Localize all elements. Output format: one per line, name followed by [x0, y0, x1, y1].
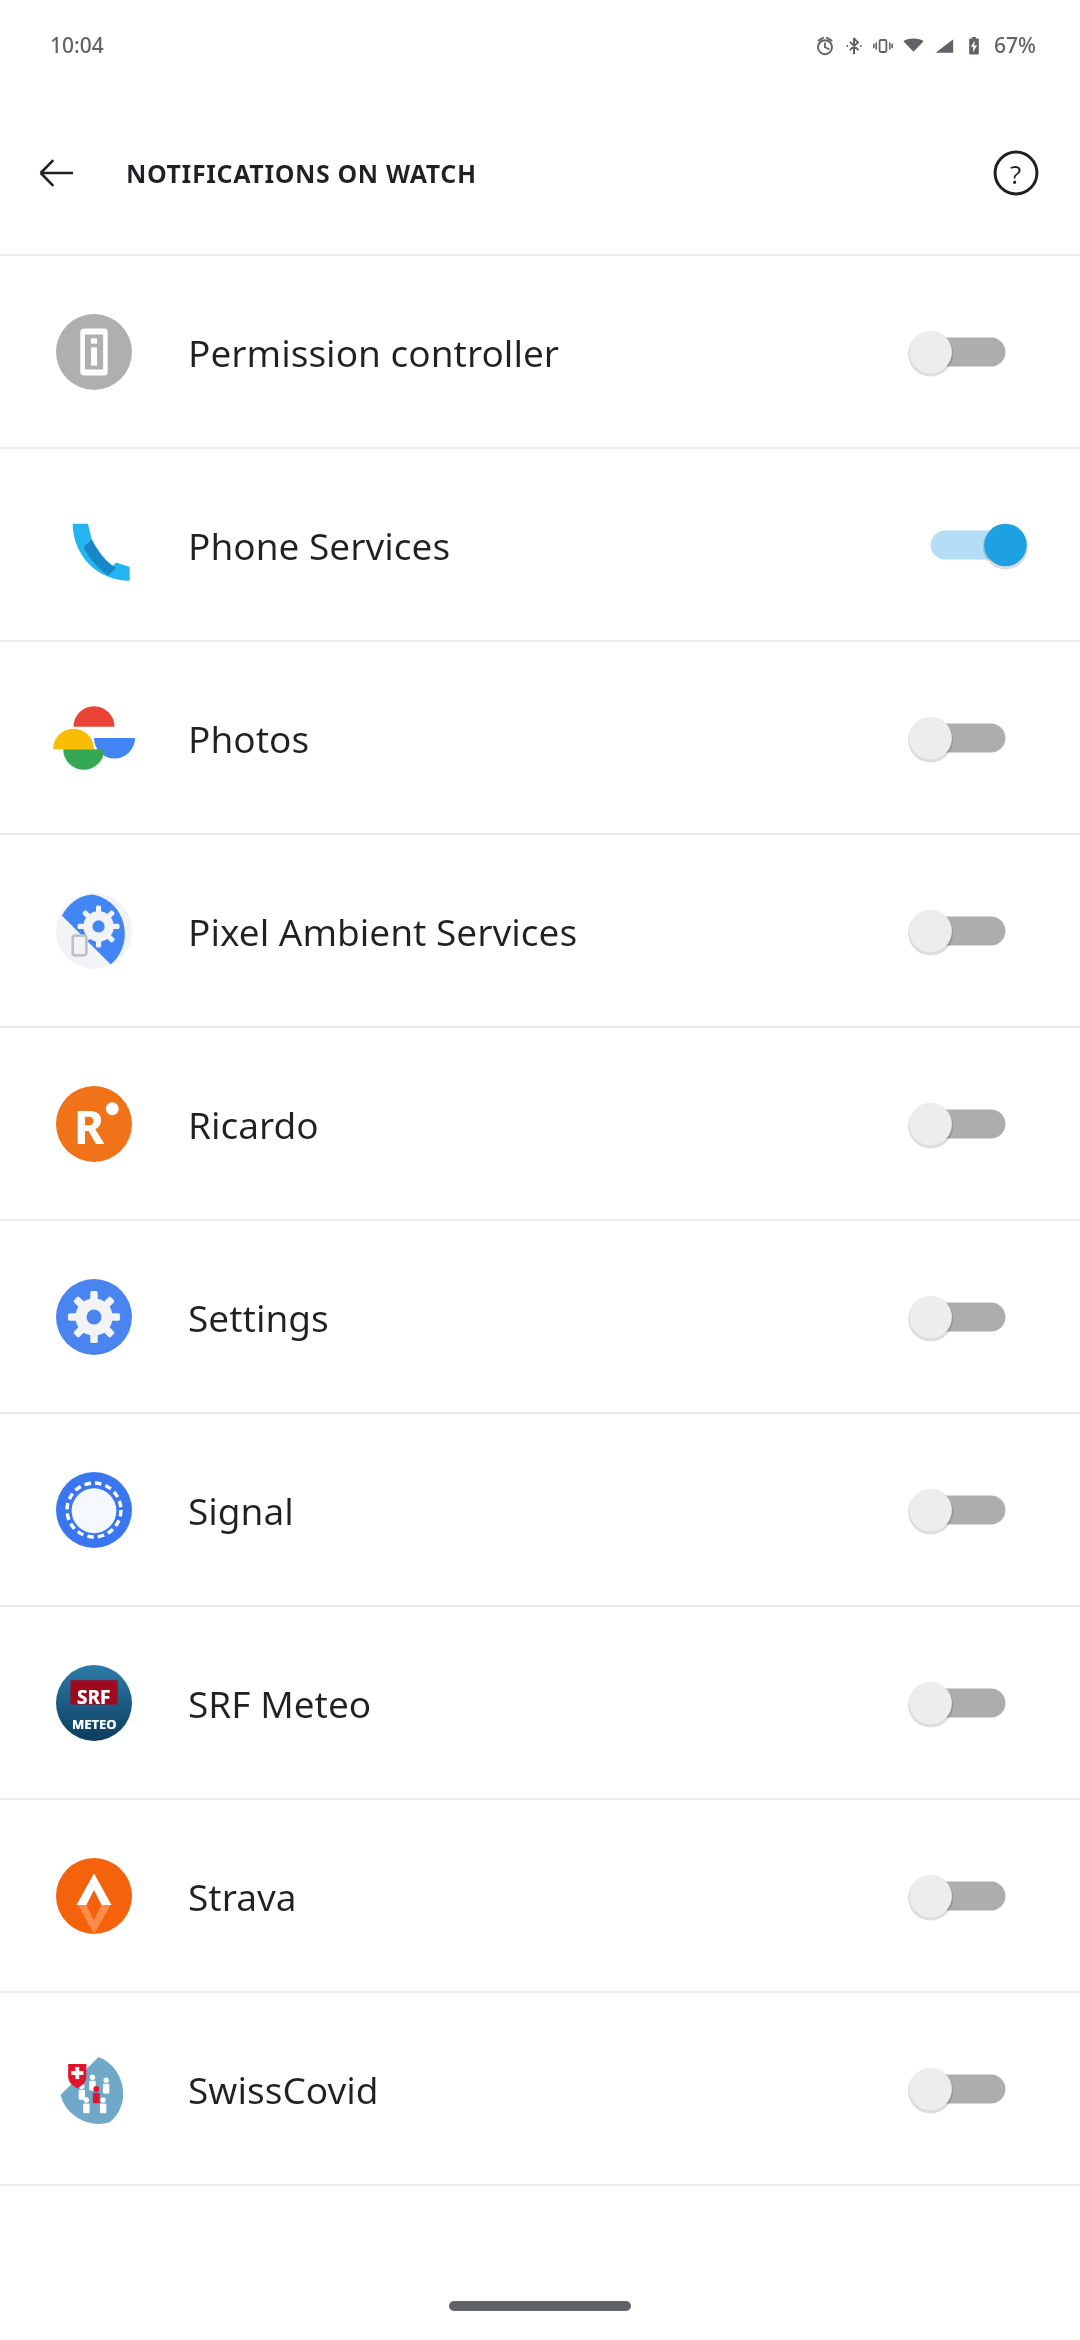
staticText: Strava — [188, 1871, 914, 1921]
button[interactable] — [914, 2049, 1024, 2129]
staticText: 67% — [994, 31, 1036, 60]
button[interactable]: SwissCovid — [0, 1993, 1080, 2184]
staticText: Ricardo — [188, 1099, 914, 1149]
staticText: 10:04 — [50, 31, 104, 60]
staticText: SRF — [77, 1684, 111, 1710]
button[interactable] — [914, 312, 1024, 392]
button[interactable] — [914, 1470, 1024, 1550]
button[interactable]: Help — [980, 137, 1052, 209]
staticText: SwissCovid — [188, 2064, 914, 2114]
button[interactable]: R — [0, 1028, 1080, 1219]
button[interactable] — [914, 1663, 1024, 1743]
staticText: ? — [1010, 156, 1022, 191]
staticText: Signal — [188, 1485, 914, 1535]
button[interactable]: Permission controller — [0, 256, 1080, 447]
staticText: SRF Meteo — [188, 1678, 914, 1728]
button[interactable]: Back — [20, 137, 92, 209]
button[interactable] — [914, 891, 1024, 971]
button[interactable] — [914, 1856, 1024, 1936]
button[interactable]: Phone Services — [0, 449, 1080, 640]
staticText: Permission controller — [188, 327, 914, 377]
staticText: METEO — [72, 1715, 117, 1733]
button[interactable]: Photos — [0, 642, 1080, 833]
staticText: NOTIFICATIONS ON WATCH — [126, 156, 477, 190]
staticText: Pixel Ambient Services — [188, 906, 914, 956]
button[interactable]: Pixel Ambient Services — [0, 835, 1080, 1026]
staticText: Photos — [188, 713, 914, 763]
staticText: R — [74, 1095, 105, 1158]
staticText: Settings — [188, 1292, 914, 1342]
button[interactable] — [914, 698, 1024, 778]
button[interactable] — [914, 505, 1024, 585]
button[interactable]: Signal — [0, 1414, 1080, 1605]
staticText: Phone Services — [188, 520, 914, 570]
button[interactable] — [914, 1084, 1024, 1164]
button[interactable]: Strava — [0, 1800, 1080, 1991]
button[interactable]: Settings — [0, 1221, 1080, 1412]
button[interactable] — [914, 1277, 1024, 1357]
button[interactable]: SRF — [0, 1607, 1080, 1798]
